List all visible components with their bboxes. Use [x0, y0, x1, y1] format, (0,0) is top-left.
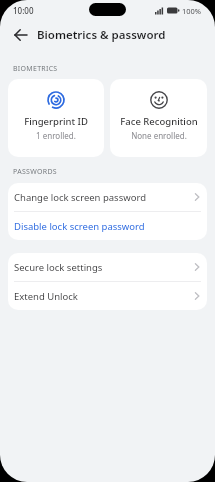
- staticText: Change lock screen password: [14, 191, 147, 204]
- button[interactable]: Extend Unlock: [8, 282, 207, 310]
- staticText: 100%: [182, 6, 202, 16]
- staticText: Secure lock settings: [14, 261, 103, 274]
- staticText: Extend Unlock: [14, 290, 78, 303]
- staticText: 10:00: [13, 5, 34, 16]
- button[interactable]: [13, 27, 29, 43]
- staticText: Fingerprint ID: [24, 115, 88, 128]
- button[interactable]: Secure lock settings: [8, 253, 207, 281]
- staticText: Face Recognition: [120, 115, 198, 128]
- button[interactable]: Disable lock screen password: [8, 212, 207, 240]
- staticText: BIOMETRICS: [13, 64, 58, 74]
- staticText: None enrolled.: [131, 130, 187, 141]
- staticText: PASSWORDS: [13, 167, 57, 177]
- staticText: Biometrics & password: [37, 27, 166, 43]
- button[interactable]: Fingerprint ID: [8, 79, 104, 157]
- button[interactable]: Face Recognition: [110, 79, 207, 157]
- button[interactable]: Change lock screen password: [8, 183, 207, 211]
- staticText: Disable lock screen password: [14, 220, 145, 233]
- staticText: 1 enrolled.: [36, 130, 76, 141]
